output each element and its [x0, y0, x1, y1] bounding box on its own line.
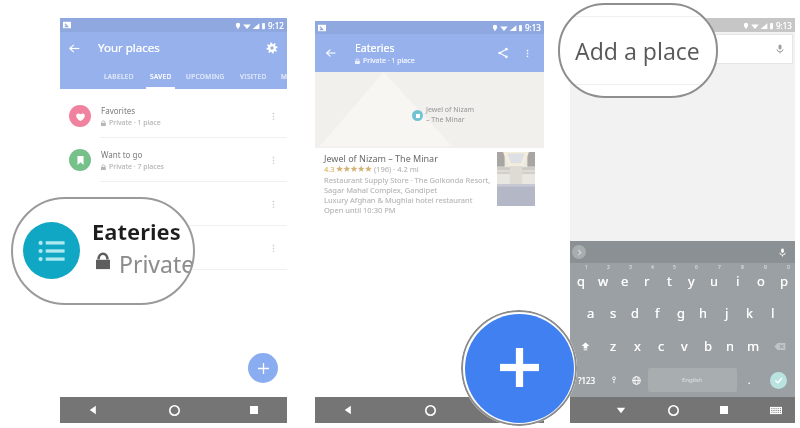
- button[interactable]: Add a place: [558, 3, 718, 98]
- staticText: Eateries: [355, 41, 395, 55]
- button[interactable]: n: [719, 329, 742, 363]
- button[interactable]: c: [649, 329, 673, 363]
- button[interactable]: .: [737, 363, 761, 397]
- button[interactable]: More options: [60, 182, 287, 226]
- button[interactable]: More options: [522, 48, 533, 59]
- button[interactable]: f: [646, 296, 669, 329]
- button[interactable]: Add a place: [461, 310, 577, 426]
- button[interactable]: Back: [325, 47, 337, 59]
- button[interactable]: h: [692, 296, 715, 329]
- button[interactable]: 4: [636, 263, 658, 296]
- staticText: .: [748, 374, 751, 386]
- button[interactable]: Settings: [266, 42, 278, 54]
- button[interactable]: Back: [68, 42, 81, 55]
- staticText: Private · 7 places: [109, 162, 164, 172]
- button[interactable]: Home: [662, 399, 684, 421]
- button[interactable]: Eateries: [11, 197, 195, 305]
- staticText: f: [655, 304, 660, 322]
- staticText: 2: [607, 264, 610, 271]
- button[interactable]: SAVED: [142, 64, 179, 89]
- button[interactable]: UPCOMING: [179, 64, 231, 89]
- button[interactable]: 1: [570, 263, 592, 296]
- button[interactable]: Switch keyboard: [765, 399, 787, 421]
- button[interactable]: ?123: [570, 363, 603, 397]
- staticText: Add a place: [575, 35, 700, 66]
- staticText: x: [634, 337, 641, 355]
- staticText: 4: [651, 264, 654, 271]
- button[interactable]: x: [625, 329, 649, 363]
- button[interactable]: b: [696, 329, 719, 363]
- staticText: UPCOMING: [186, 72, 225, 81]
- button[interactable]: k: [738, 296, 761, 329]
- button[interactable]: Recent apps: [500, 399, 522, 421]
- button[interactable]: More options: [60, 226, 287, 270]
- button[interactable]: 3: [614, 263, 636, 296]
- button[interactable]: MA: [276, 64, 296, 89]
- button[interactable]: 9: [749, 263, 772, 296]
- button[interactable]: 0: [772, 263, 795, 296]
- button[interactable]: 6: [680, 263, 703, 296]
- button[interactable]: 8: [726, 263, 749, 296]
- button[interactable]: j: [715, 296, 738, 329]
- staticText: p: [780, 272, 788, 290]
- button[interactable]: Favorites: [60, 94, 287, 138]
- staticText: SAVED: [150, 72, 172, 81]
- button[interactable]: Language: [624, 363, 648, 397]
- button[interactable]: Recent apps: [243, 399, 265, 421]
- button[interactable]: More options: [268, 155, 279, 166]
- button[interactable]: Shift: [570, 329, 601, 363]
- staticText: r: [644, 272, 650, 290]
- button[interactable]: Want to go: [60, 138, 287, 182]
- staticText: (196) · 4.2 mi: [374, 164, 419, 174]
- button[interactable]: Home: [419, 399, 441, 421]
- staticText: h: [699, 304, 708, 322]
- button[interactable]: z: [601, 329, 625, 363]
- staticText: Luxury Afghan & Mughlai hotel restaurant: [324, 195, 473, 205]
- button[interactable]: s: [602, 296, 624, 329]
- button[interactable]: 2: [592, 263, 614, 296]
- button[interactable]: Delete: [765, 329, 795, 363]
- button[interactable]: Home: [163, 399, 185, 421]
- button[interactable]: Voice search: [572, 34, 793, 64]
- button[interactable]: Done: [770, 372, 787, 389]
- button[interactable]: d: [624, 296, 646, 329]
- button[interactable]: [603, 363, 624, 397]
- button[interactable]: More options: [268, 199, 279, 210]
- staticText: 9:12: [268, 20, 284, 31]
- staticText: v: [681, 337, 688, 355]
- staticText: 9:13: [776, 20, 792, 31]
- button[interactable]: Recent apps: [713, 399, 735, 421]
- button[interactable]: [572, 245, 586, 259]
- button[interactable]: Share: [497, 47, 509, 59]
- button[interactable]: More options: [268, 243, 279, 254]
- button[interactable]: More options: [268, 111, 279, 122]
- button[interactable]: a: [580, 296, 602, 329]
- staticText: VISITED: [240, 72, 267, 81]
- button[interactable]: VISITED: [231, 64, 276, 89]
- button[interactable]: v: [673, 329, 696, 363]
- button[interactable]: l: [761, 296, 784, 329]
- button[interactable]: Back: [82, 399, 104, 421]
- staticText: Sagar Mahal Complex, Gandipet: [324, 185, 438, 195]
- staticText: ?123: [578, 375, 596, 386]
- staticText: g: [677, 304, 685, 322]
- staticText: Jewel of Nizam – The Minar: [324, 152, 438, 164]
- staticText: Your places: [98, 40, 160, 56]
- staticText: a: [587, 304, 595, 322]
- staticText: b: [704, 337, 712, 355]
- button[interactable]: 5: [658, 263, 680, 296]
- button[interactable]: English: [648, 368, 737, 392]
- button[interactable]: Add: [248, 353, 278, 383]
- staticText: 8: [741, 264, 744, 271]
- button[interactable]: Back: [337, 399, 359, 421]
- button[interactable]: m: [742, 329, 765, 363]
- staticText: Private · 1 place: [363, 56, 415, 66]
- button[interactable]: g: [669, 296, 692, 329]
- staticText: l: [771, 304, 775, 322]
- staticText: o: [757, 272, 765, 290]
- staticText: 9:13: [525, 22, 541, 33]
- button[interactable]: Hide keyboard: [610, 399, 632, 421]
- staticText: 6: [695, 264, 698, 271]
- button[interactable]: LABELED: [96, 64, 142, 89]
- button[interactable]: 7: [703, 263, 726, 296]
